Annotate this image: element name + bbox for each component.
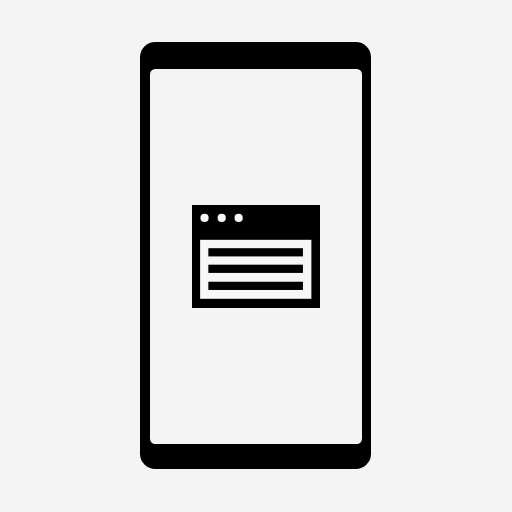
- button[interactable]: Mobile browser illustration: [0, 0, 512, 512]
- button[interactable]: Browser window: [192, 205, 320, 308]
- button[interactable]: Smartphone: [140, 42, 371, 469]
